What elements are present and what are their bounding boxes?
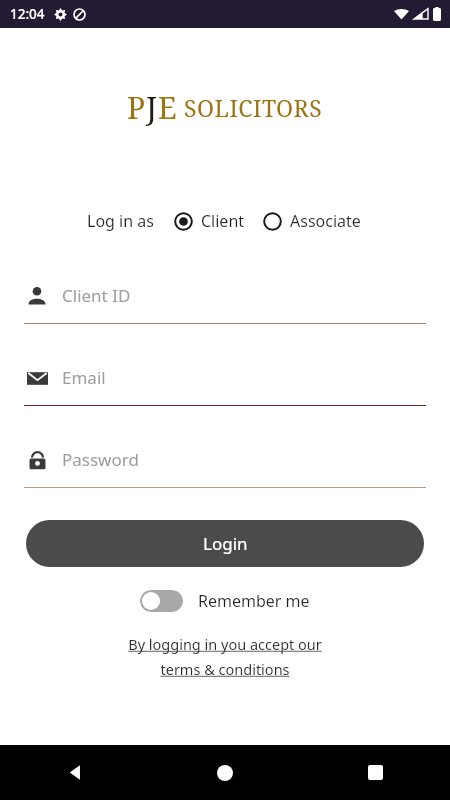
button[interactable]: Email [0, 366, 450, 406]
staticText: Associate [290, 210, 361, 232]
staticText: Remember me [198, 590, 310, 612]
staticText: By logging in you accept our [128, 634, 322, 654]
staticText: Login [203, 532, 248, 555]
button[interactable]: Remember me toggle [140, 590, 183, 612]
staticText: Log in as [87, 210, 154, 232]
staticText: Password [62, 448, 139, 471]
button[interactable]: Login [26, 520, 424, 567]
button[interactable]: Home [150, 745, 300, 800]
staticText: Email [62, 366, 106, 389]
staticText: J [146, 86, 158, 128]
staticText: SOLICITORS [184, 92, 323, 123]
staticText: P [127, 87, 146, 128]
button[interactable]: By logging in you accept our [0, 634, 450, 679]
button[interactable]: Client [172, 206, 247, 236]
staticText: 12:04 [10, 5, 45, 23]
button[interactable]: Password [0, 448, 450, 488]
staticText: terms & conditions [160, 659, 290, 679]
button[interactable]: Associate [261, 206, 363, 236]
staticText: Client ID [62, 284, 131, 307]
button[interactable]: Recent apps [300, 745, 450, 800]
staticText: Client [201, 210, 245, 232]
staticText: E [158, 87, 177, 128]
button[interactable]: Client ID [0, 284, 450, 324]
button[interactable]: Back [0, 745, 150, 800]
